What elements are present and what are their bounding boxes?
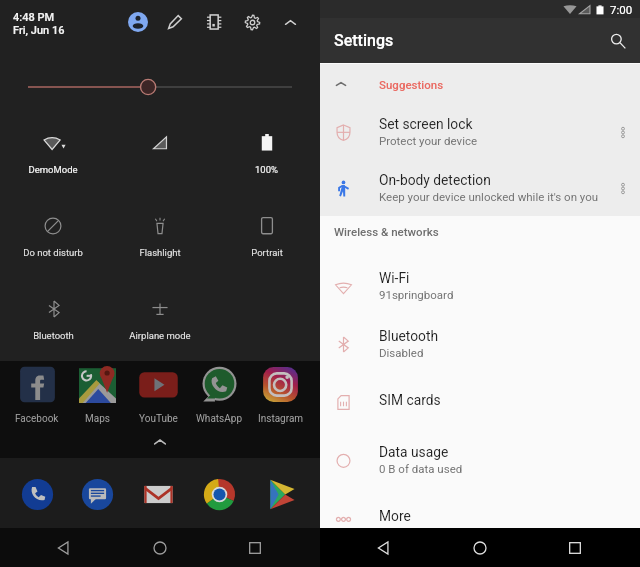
button[interactable]: Bluetooth [320, 315, 640, 373]
staticText: Settings [334, 31, 394, 50]
button[interactable]: Do not disturb [0, 215, 106, 265]
staticText: Suggestions [379, 78, 444, 91]
button[interactable]: Home [460, 528, 500, 567]
button[interactable]: Maps [67, 366, 128, 425]
staticText: Data usage [379, 444, 449, 460]
staticText: 7:00 [610, 3, 633, 16]
staticText: DemoMode [28, 164, 78, 175]
button[interactable]: Back [44, 528, 84, 567]
button[interactable]: Recents [235, 528, 275, 567]
button[interactable]: YouTube [128, 366, 189, 425]
button[interactable]: Collapse [275, 7, 305, 37]
staticText: Do not disturb [23, 247, 83, 258]
button[interactable]: Recents [555, 528, 595, 567]
button[interactable]: WhatsApp [189, 366, 250, 425]
button[interactable] [128, 475, 189, 514]
staticText: Fri, Jun 16 [13, 24, 65, 37]
staticText: Set screen lock [379, 116, 473, 132]
button[interactable]: SIM cards [320, 373, 640, 431]
button[interactable]: Instagram [250, 366, 311, 425]
button[interactable]: More options [605, 161, 640, 216]
staticText: 91springboard [379, 288, 454, 301]
button[interactable] [67, 475, 128, 514]
staticText: Bluetooth [379, 328, 439, 344]
button[interactable]: Memory [199, 7, 229, 37]
staticText: 0 B of data used [379, 462, 463, 475]
staticText: Instagram [258, 413, 304, 425]
staticText: Protect your device [379, 134, 478, 147]
staticText: Wi-Fi [379, 270, 410, 286]
button[interactable]: Data usage [320, 431, 640, 489]
button[interactable]: Home [140, 528, 180, 567]
button[interactable]: Profile [123, 7, 153, 37]
button[interactable]: DemoMode [0, 132, 106, 182]
staticText: YouTube [139, 413, 178, 425]
staticText: Airplane mode [129, 330, 191, 341]
button[interactable]: Set screen lock [320, 104, 640, 161]
button[interactable]: Search [597, 20, 639, 62]
staticText: More [379, 508, 411, 524]
button[interactable]: Bluetooth [0, 298, 106, 348]
button[interactable] [106, 132, 213, 182]
button[interactable]: On-body detection [320, 161, 640, 216]
button[interactable]: Wi-Fi [320, 257, 640, 315]
button[interactable]: Settings [237, 7, 267, 37]
button[interactable]: Back [364, 528, 404, 567]
staticText: 4:48 PM [13, 11, 55, 24]
staticText: WhatsApp [196, 413, 243, 425]
staticText: Flashlight [139, 247, 181, 258]
button[interactable] [189, 475, 250, 514]
button[interactable]: 100% [213, 132, 320, 182]
button[interactable]: Suggestions [320, 64, 640, 104]
button[interactable] [7, 475, 67, 514]
staticText: SIM cards [379, 392, 441, 408]
staticText: 100% [255, 164, 278, 175]
button[interactable] [250, 475, 311, 514]
staticText: Facebook [15, 413, 59, 425]
staticText: On-body detection [379, 172, 491, 188]
button[interactable]: Flashlight [106, 215, 213, 265]
staticText: Maps [85, 413, 110, 425]
button[interactable]: Airplane mode [106, 298, 213, 348]
button[interactable]: More options [605, 104, 640, 161]
button[interactable]: More [320, 489, 640, 547]
button[interactable]: Portrait [213, 215, 320, 265]
staticText: Disabled [379, 346, 424, 359]
button[interactable]: All apps [0, 428, 320, 456]
staticText: Wireless & networks [334, 225, 439, 238]
staticText: Keep your device unlocked while it's on … [379, 190, 599, 203]
staticText: Bluetooth [33, 330, 74, 341]
button[interactable]: Facebook [7, 366, 67, 425]
staticText: Portrait [251, 247, 283, 258]
button[interactable]: Edit [160, 7, 190, 37]
